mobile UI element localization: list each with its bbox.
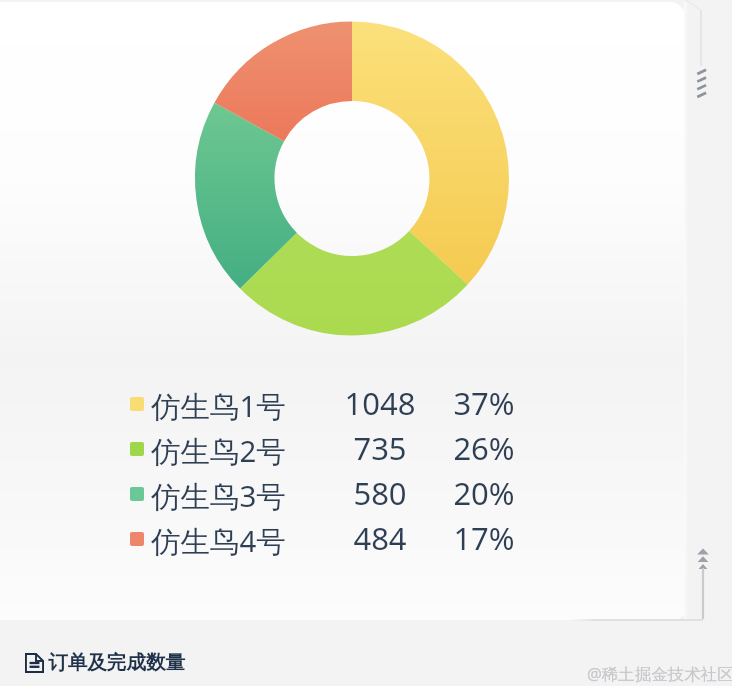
staticText: 仿生鸟4号 (151, 520, 286, 560)
staticText: 26% (424, 427, 544, 469)
staticText: 仿生鸟3号 (151, 475, 286, 515)
staticText: 20% (424, 472, 544, 514)
other: Scroll handle (0, 0, 732, 686)
button[interactable]: 仿生鸟3号 (0, 472, 732, 517)
button[interactable]: 仿生鸟4号 (0, 517, 732, 562)
staticText: 580 (320, 472, 440, 514)
staticText: 484 (320, 517, 440, 559)
staticText: 735 (320, 427, 440, 469)
button[interactable]: 仿生鸟2号 (0, 427, 732, 472)
staticText: 37% (424, 382, 544, 424)
staticText: 仿生鸟2号 (151, 430, 286, 470)
button[interactable]: 订单及完成数量 (25, 650, 186, 675)
staticText: 仿生鸟1号 (151, 385, 286, 425)
button[interactable]: 仿生鸟1号 (0, 382, 732, 427)
staticText: 订单及完成数量 (48, 650, 186, 675)
staticText: @稀土掘金技术社区 (587, 662, 732, 685)
staticText: 17% (424, 517, 544, 559)
staticText: 1048 (320, 382, 440, 424)
